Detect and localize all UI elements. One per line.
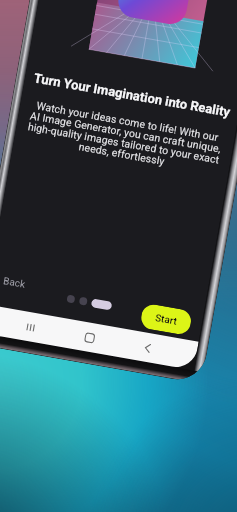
staticText: Watch your ideas come to life! With our … xyxy=(14,96,235,178)
button[interactable]: Home xyxy=(78,326,101,349)
staticText: Start xyxy=(154,312,178,328)
button[interactable]: Start xyxy=(139,303,193,336)
staticText: Turn Your Imagination into Reality xyxy=(24,69,237,121)
button[interactable]: Back xyxy=(136,336,159,360)
button[interactable]: Recent apps xyxy=(19,316,42,339)
staticText: Back xyxy=(2,275,26,291)
button[interactable]: Back xyxy=(0,273,28,293)
